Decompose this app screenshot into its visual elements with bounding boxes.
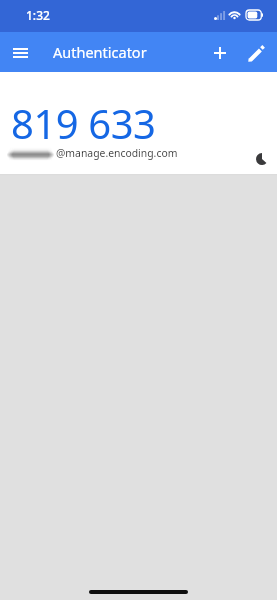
staticText: 819 633 [11, 96, 156, 150]
button[interactable]: Edit accounts [238, 32, 274, 72]
staticText: 1:32 [26, 7, 50, 23]
button[interactable]: Add account [202, 32, 238, 72]
button[interactable]: Open navigation menu [0, 32, 40, 72]
button[interactable]: 819 633 [0, 72, 277, 174]
staticText: Authenticator [53, 42, 147, 62]
staticText: @manage.encoding.com [56, 146, 178, 160]
